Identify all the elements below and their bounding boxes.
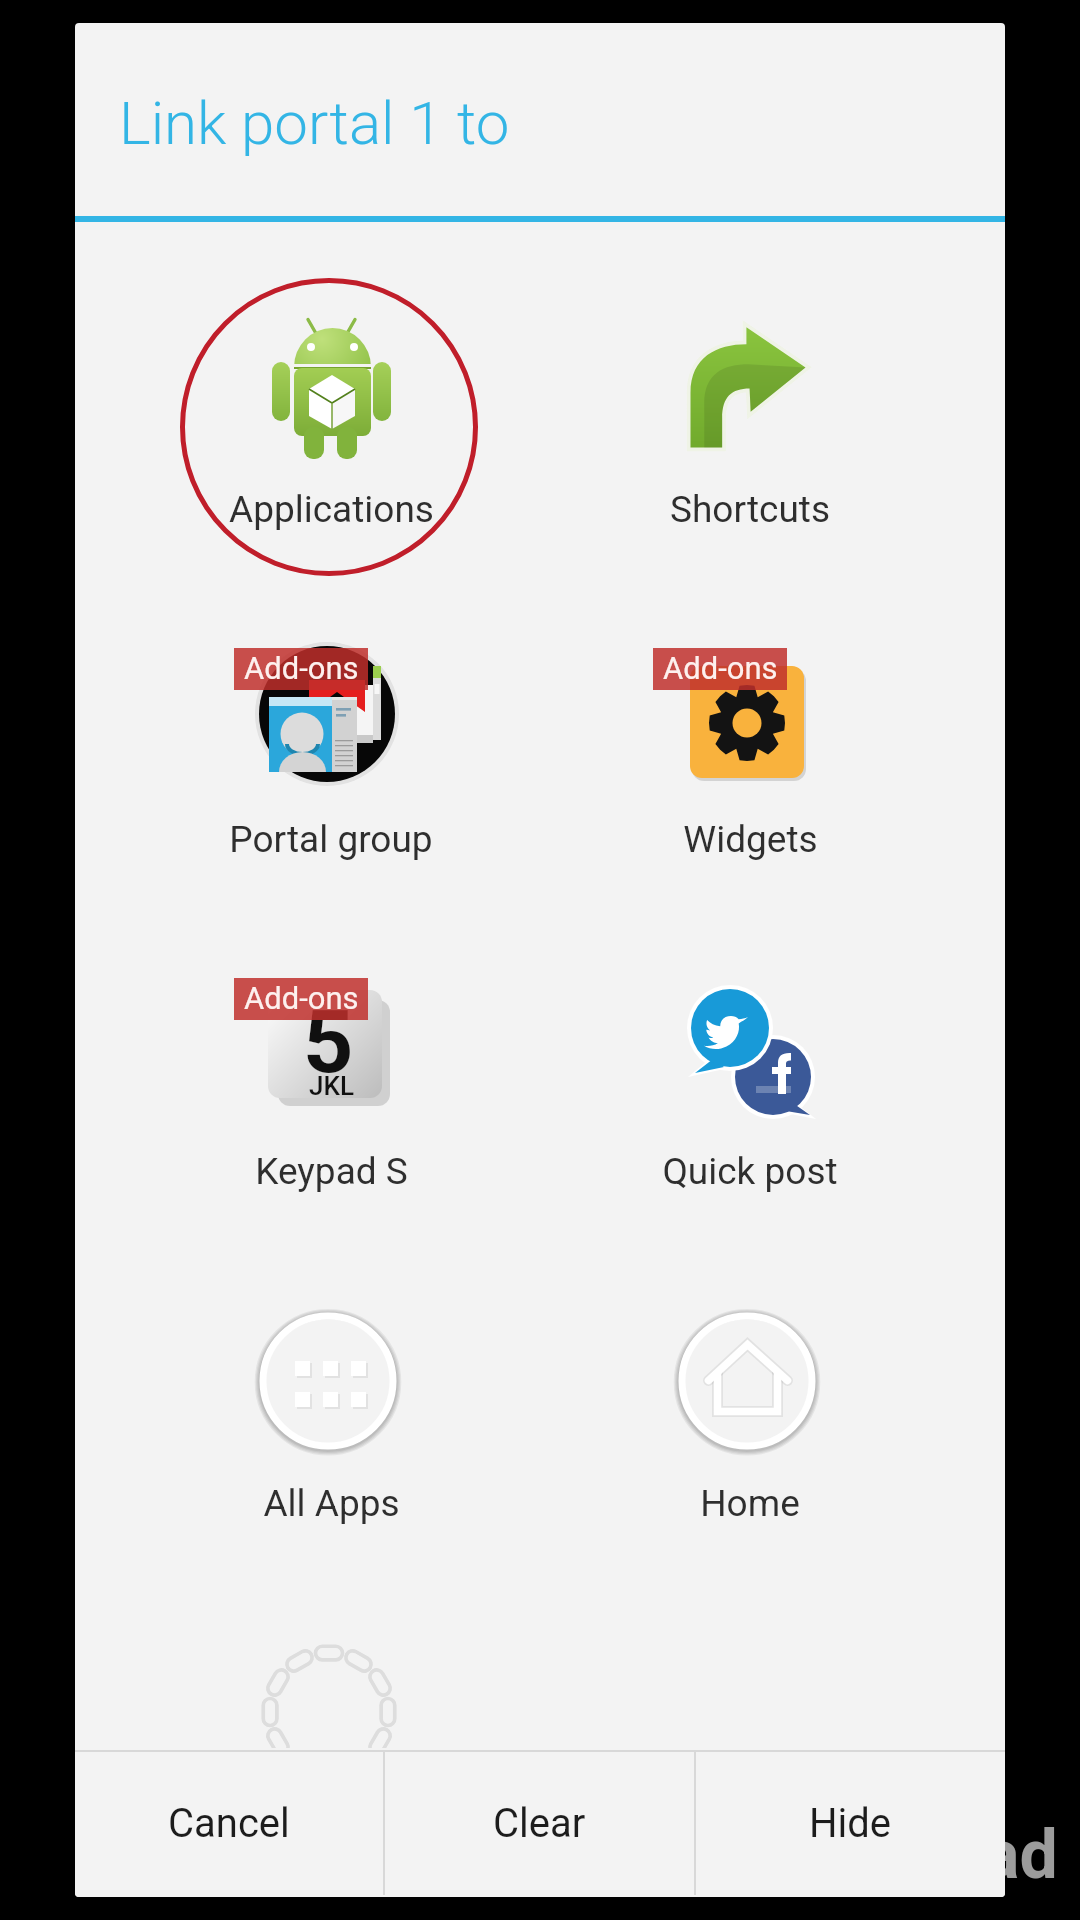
staticText: ad [983,1815,1058,1895]
staticText: Shortcuts [670,488,830,531]
button[interactable]: Hide [696,1752,1005,1895]
staticText: Cancel [168,1800,290,1847]
staticText: Add-ons [663,650,778,686]
staticText: Clear [493,1800,586,1847]
staticText: All Apps [263,1482,400,1525]
staticText: Applications [229,488,434,531]
staticText: JKL [309,1071,354,1101]
staticText: 5 [303,990,354,1093]
button[interactable]: Quick post [539,930,957,1230]
button[interactable]: Cancel [75,1752,383,1895]
button[interactable]: Shortcuts [539,269,957,569]
staticText: Home [700,1482,800,1525]
button[interactable]: 5 [120,930,538,1230]
button[interactable]: All Apps [120,1261,538,1561]
staticText: Add-ons [244,650,359,686]
staticText: Quick post [662,1150,838,1193]
staticText: Hide [809,1800,892,1847]
staticText: Portal group [229,818,433,861]
button[interactable]: Home [539,1261,957,1561]
staticText: Link portal 1 to [119,88,510,158]
button[interactable]: Add-ons [539,600,957,900]
button[interactable]: Clear [385,1752,694,1895]
button[interactable]: Applications [120,269,538,569]
staticText: Keypad S [255,1150,408,1193]
button[interactable]: Add-ons [120,600,538,900]
staticText: Add-ons [244,980,359,1016]
staticText: Widgets [683,818,818,861]
